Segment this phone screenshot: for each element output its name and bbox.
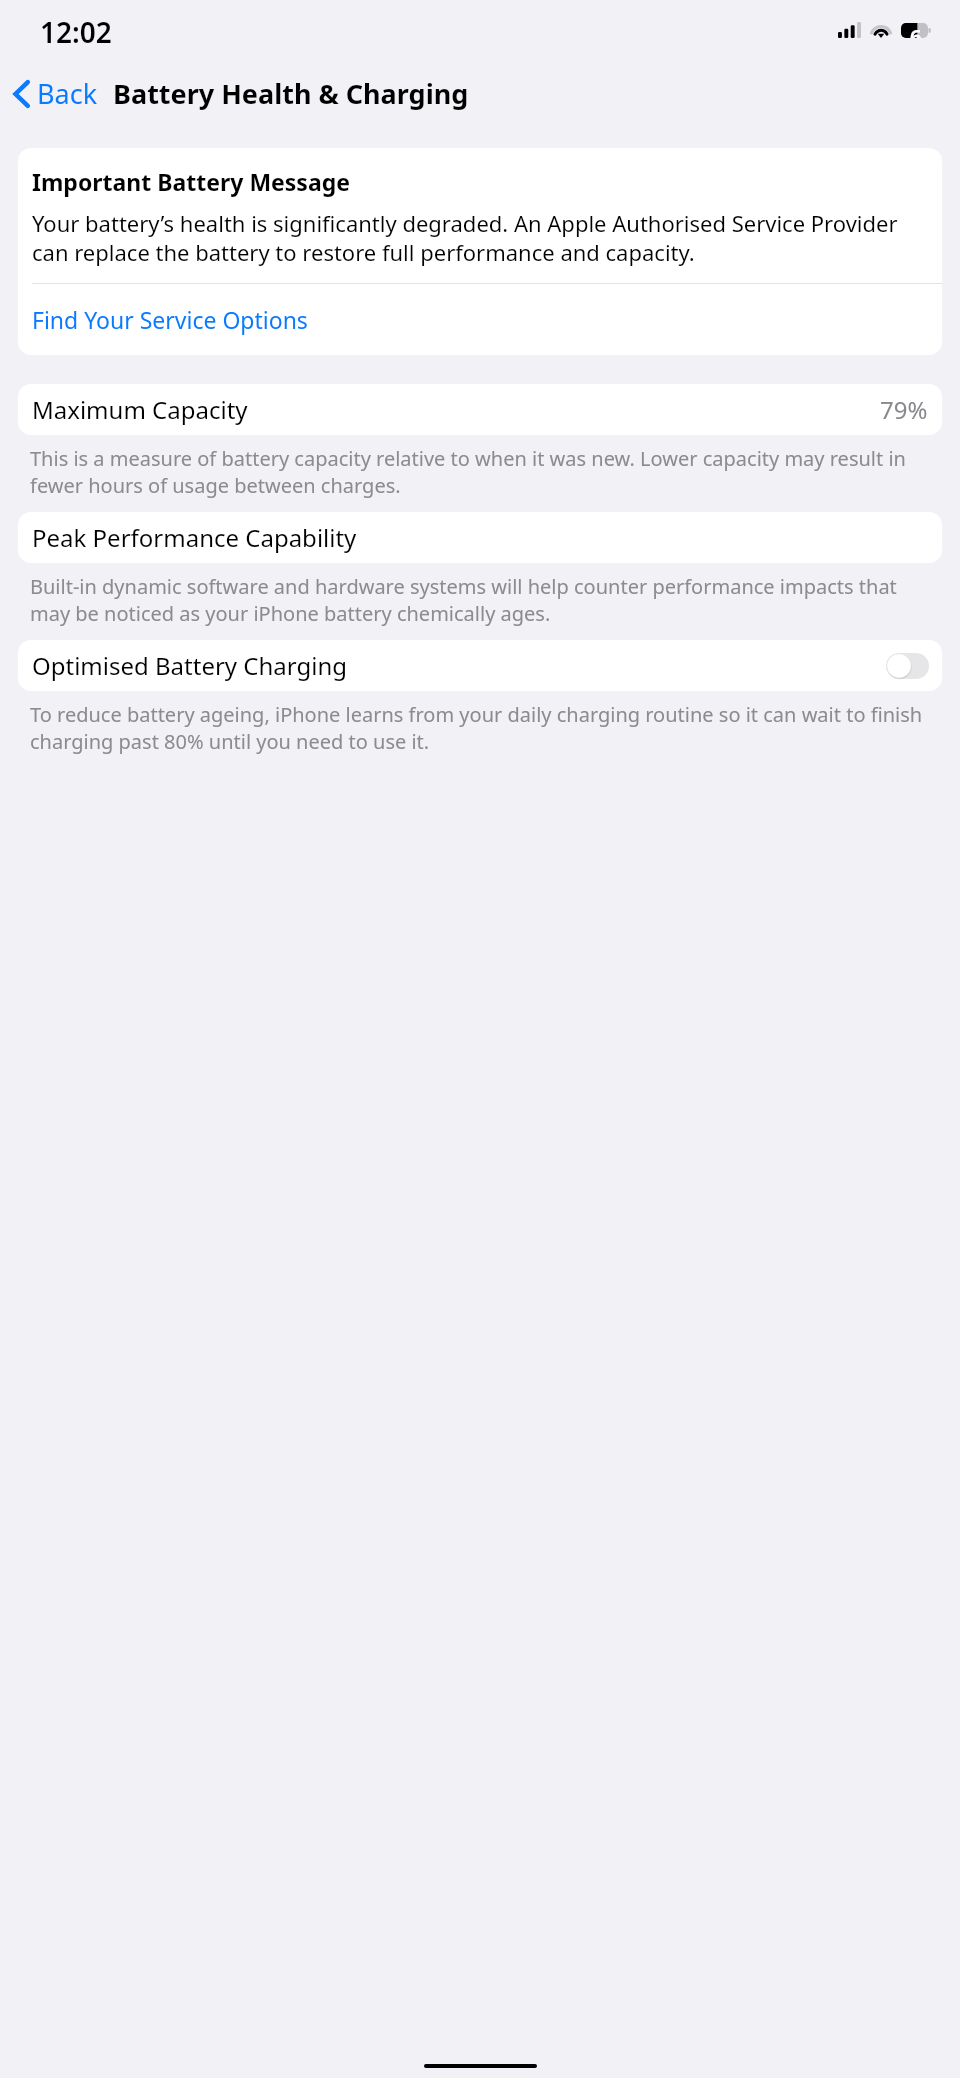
staticText: 79% [880, 393, 928, 426]
staticText: Important Battery Message [32, 166, 350, 197]
staticText: Maximum Capacity [32, 393, 248, 426]
staticText: To reduce battery ageing, iPhone learns … [30, 701, 928, 755]
button[interactable]: Maximum Capacity [18, 384, 942, 435]
button[interactable]: Back [0, 69, 108, 118]
staticText: Your battery’s health is significantly d… [32, 208, 928, 267]
staticText: This is a measure of battery capacity re… [30, 445, 928, 499]
staticText: Find Your Service Options [32, 304, 308, 335]
staticText: 12:02 [40, 13, 112, 51]
staticText: Optimised Battery Charging [32, 649, 348, 682]
staticText: Battery Health & Charging [113, 75, 469, 112]
button[interactable]: Optimised Battery Charging [18, 640, 942, 691]
staticText: Back [37, 75, 98, 112]
other: Optimised Battery Charging toggle, off [886, 653, 929, 679]
button[interactable]: Find Your Service Options [18, 284, 942, 355]
button[interactable]: Peak Performance Capability [18, 512, 942, 563]
staticText: Peak Performance Capability [32, 521, 357, 554]
staticText: 60 [910, 23, 931, 38]
staticText: Built-in dynamic software and hardware s… [30, 573, 928, 627]
